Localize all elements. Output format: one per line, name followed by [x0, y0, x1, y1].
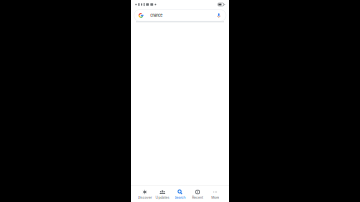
staticText: Recent — [192, 195, 203, 200]
button[interactable]: Recent — [189, 186, 206, 202]
staticText: Discover — [138, 195, 152, 200]
staticText: chance — [150, 13, 162, 18]
button[interactable]: Discover — [136, 186, 154, 202]
button[interactable]: Search — [171, 186, 189, 202]
button[interactable]: Updates — [154, 186, 171, 202]
staticText: Updates — [155, 195, 169, 200]
staticText: More — [211, 195, 219, 200]
button[interactable]: chance — [134, 10, 226, 21]
staticText: Search — [174, 195, 185, 200]
button[interactable]: More — [206, 186, 224, 202]
